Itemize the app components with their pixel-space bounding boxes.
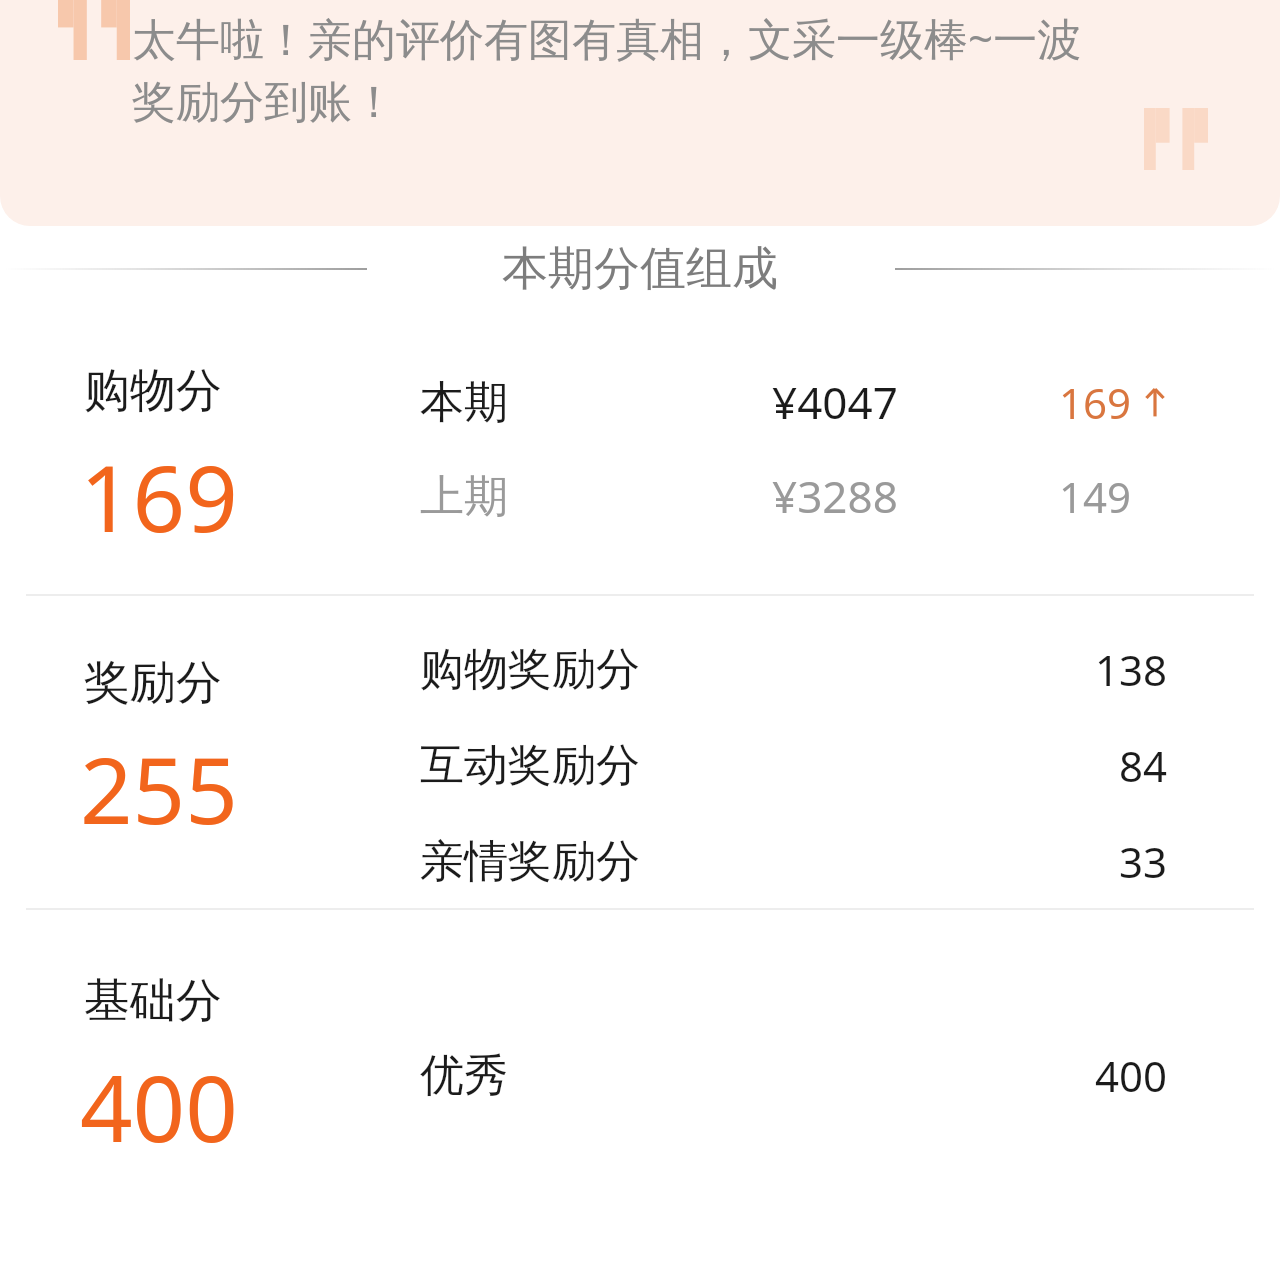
staticText: 33 bbox=[1119, 833, 1168, 890]
staticText: 优秀 bbox=[420, 1048, 508, 1103]
staticText: 255 bbox=[80, 726, 238, 851]
staticText: 本期 bbox=[420, 375, 508, 430]
staticText: 上期 bbox=[420, 469, 508, 524]
button[interactable]: 上期 bbox=[420, 464, 1168, 528]
staticText: 本期分值组成 bbox=[502, 240, 778, 298]
button[interactable]: 购物分 bbox=[0, 354, 1280, 594]
staticText: ¥3288 bbox=[772, 466, 898, 526]
other: Increase bbox=[1142, 382, 1168, 422]
staticText: 169 bbox=[1059, 374, 1132, 431]
staticText: 400 bbox=[1095, 1047, 1168, 1104]
button[interactable]: 奖励分 bbox=[0, 596, 1280, 908]
staticText: 149 bbox=[1059, 468, 1132, 525]
button[interactable]: 基础分 bbox=[0, 910, 1280, 1180]
staticText: 奖励分 bbox=[84, 654, 222, 712]
button[interactable]: 本期 bbox=[420, 370, 1168, 434]
staticText: 138 bbox=[1095, 641, 1168, 698]
staticText: 400 bbox=[80, 1044, 238, 1169]
staticText: 84 bbox=[1119, 737, 1168, 794]
staticText: 太牛啦！亲的评价有图有真相，文采一级棒~一波奖励分到账！ bbox=[132, 8, 1120, 130]
staticText: 购物分 bbox=[84, 362, 222, 420]
staticText: 基础分 bbox=[84, 972, 222, 1030]
staticText: 购物奖励分 bbox=[420, 642, 640, 697]
button[interactable]: 优秀 bbox=[420, 1046, 1168, 1104]
staticText: ¥4047 bbox=[772, 372, 898, 432]
staticText: 169 bbox=[80, 434, 238, 559]
button[interactable]: 亲情奖励分 bbox=[420, 832, 1168, 890]
staticText: 互动奖励分 bbox=[420, 738, 640, 793]
staticText: 亲情奖励分 bbox=[420, 834, 640, 889]
button[interactable]: 购物奖励分 bbox=[420, 640, 1168, 698]
button[interactable]: 互动奖励分 bbox=[420, 736, 1168, 794]
